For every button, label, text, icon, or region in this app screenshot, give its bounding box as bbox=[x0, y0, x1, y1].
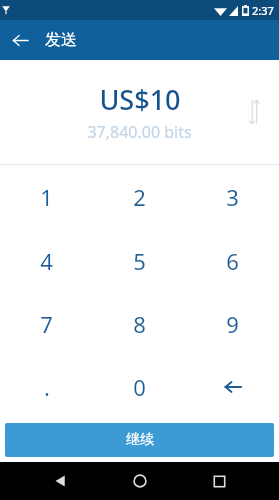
button[interactable]: 2 bbox=[93, 165, 186, 229]
button[interactable]: 8 bbox=[93, 292, 186, 355]
button[interactable]: 4 bbox=[0, 229, 93, 292]
staticText: 37,840.00 bits bbox=[87, 121, 192, 143]
button[interactable]: 5 bbox=[93, 229, 186, 292]
staticText: 发送 bbox=[45, 30, 77, 50]
staticText: 2 bbox=[133, 182, 146, 212]
staticText: 1 bbox=[40, 182, 53, 212]
button[interactable]: Back bbox=[0, 20, 40, 60]
staticText: 3 bbox=[226, 182, 239, 212]
button[interactable]: Swap currency bbox=[237, 95, 271, 129]
button[interactable]: Recents bbox=[200, 462, 238, 500]
staticText: 继续 bbox=[126, 431, 154, 449]
button[interactable]: 6 bbox=[186, 229, 279, 292]
button[interactable]: 1 bbox=[0, 165, 93, 229]
staticText: 5 bbox=[133, 246, 146, 276]
button[interactable]: 9 bbox=[186, 292, 279, 355]
button[interactable]: 0 bbox=[93, 355, 186, 418]
staticText: . bbox=[44, 372, 50, 402]
staticText: US$10 bbox=[99, 81, 181, 118]
staticText: 7 bbox=[40, 309, 53, 339]
button[interactable]: 7 bbox=[0, 292, 93, 355]
button[interactable]: Home bbox=[121, 462, 159, 500]
staticText: 8 bbox=[133, 309, 146, 339]
button[interactable]: 继续 bbox=[5, 423, 274, 457]
button[interactable]: 3 bbox=[186, 165, 279, 229]
staticText: 0 bbox=[133, 372, 146, 402]
staticText: 9 bbox=[226, 309, 239, 339]
button[interactable]: Back bbox=[41, 462, 79, 500]
button[interactable]: Backspace bbox=[186, 355, 279, 418]
staticText: 6 bbox=[226, 246, 239, 276]
staticText: 4 bbox=[40, 246, 53, 276]
button[interactable]: . bbox=[0, 355, 93, 418]
staticText: 2:37 bbox=[252, 3, 274, 18]
